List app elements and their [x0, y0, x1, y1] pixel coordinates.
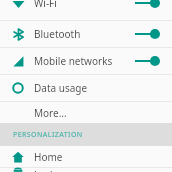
button[interactable]: Home: [0, 146, 172, 167]
staticText: Lock screen: [34, 168, 161, 172]
staticText: PERSONALIZATION: [13, 130, 83, 140]
button[interactable]: More...: [0, 102, 172, 123]
staticText: Data usage: [34, 81, 161, 95]
staticText: Mobile networks: [34, 54, 134, 68]
button[interactable]: Toggle: [134, 54, 161, 68]
button[interactable]: Wi-Fi: [0, 0, 172, 20]
button[interactable]: Bluetooth: [0, 21, 172, 47]
button[interactable]: Toggle: [134, 0, 161, 10]
staticText: Wi-Fi: [34, 0, 134, 10]
button[interactable]: Data usage: [0, 75, 172, 101]
button[interactable]: Mobile networks: [0, 48, 172, 74]
staticText: Home: [34, 150, 161, 164]
staticText: More...: [34, 106, 161, 120]
button[interactable]: Toggle: [134, 27, 161, 41]
button[interactable]: Lock screen: [0, 168, 172, 172]
staticText: Bluetooth: [34, 27, 134, 41]
